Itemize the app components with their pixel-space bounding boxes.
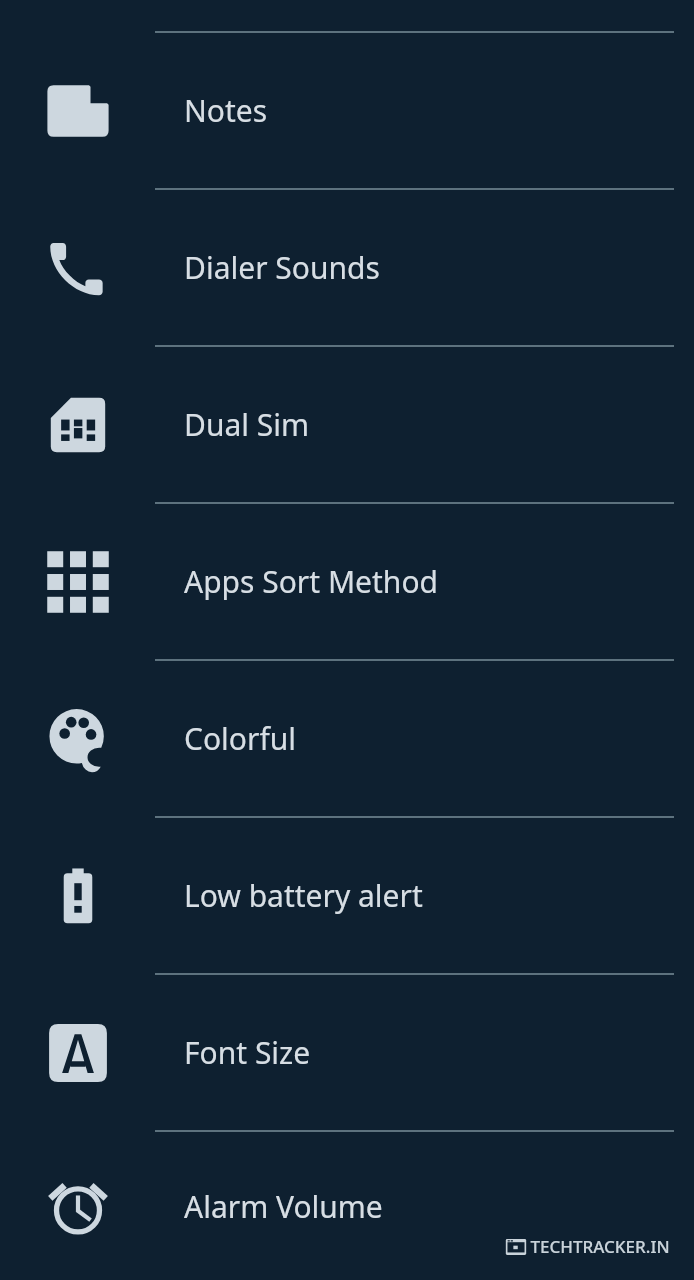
staticText: Font Size <box>184 1032 311 1073</box>
button[interactable]: Colorful <box>0 661 694 816</box>
staticText: Alarm Volume <box>184 1186 383 1227</box>
button[interactable]: Alarm Volume <box>0 1132 694 1280</box>
button[interactable]: Notes <box>0 33 694 188</box>
staticText: Dialer Sounds <box>184 247 380 288</box>
staticText: Low battery alert <box>184 875 423 916</box>
button[interactable]: Dialer Sounds <box>0 190 694 345</box>
staticText: Notes <box>184 90 268 131</box>
button[interactable]: Low battery alert <box>0 818 694 973</box>
staticText: TECHTRACKER.IN <box>530 1235 670 1258</box>
staticText: Apps Sort Method <box>184 561 438 602</box>
button[interactable]: Apps Sort Method <box>0 504 694 659</box>
button[interactable]: Dual Sim <box>0 347 694 502</box>
staticText: Colorful <box>184 718 296 759</box>
staticText: Dual Sim <box>184 404 310 445</box>
button[interactable]: Font Size <box>0 975 694 1130</box>
